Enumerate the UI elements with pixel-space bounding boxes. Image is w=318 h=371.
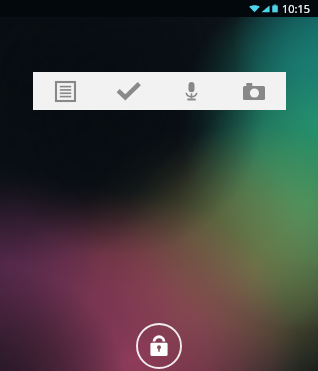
button[interactable]: Voice search [169,72,213,110]
button[interactable]: Tasks [106,72,150,110]
button[interactable]: Text messages [43,72,87,110]
button[interactable]: Camera [232,72,276,110]
staticText: 10:15 [282,1,311,16]
button[interactable]: Unlock [134,321,184,371]
